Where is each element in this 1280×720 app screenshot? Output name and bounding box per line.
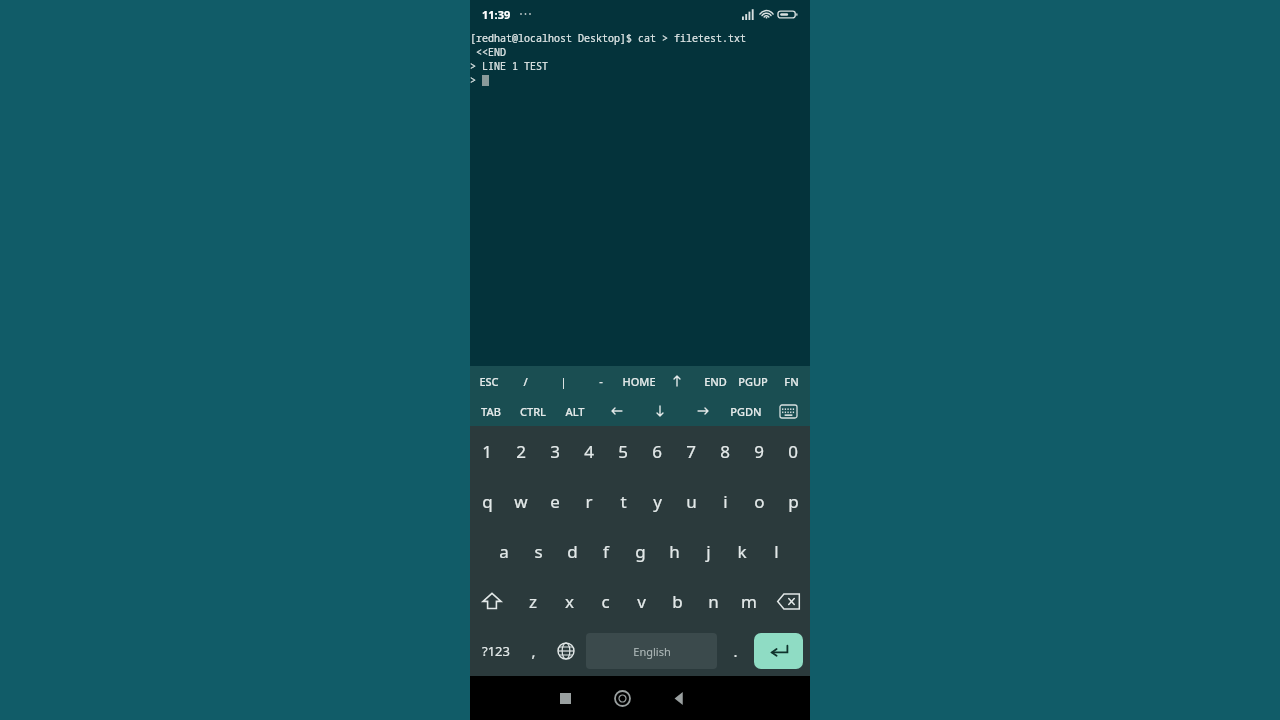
button[interactable]: Down — [638, 396, 681, 426]
staticText: z — [529, 590, 537, 613]
button[interactable]: 1 — [470, 426, 504, 476]
button[interactable]: o — [742, 476, 776, 526]
button[interactable]: 4 — [572, 426, 606, 476]
button[interactable]: g — [623, 526, 657, 576]
staticText: FN — [784, 374, 799, 389]
staticText: k — [737, 540, 747, 563]
button[interactable]: j — [691, 526, 725, 576]
staticText: . — [733, 641, 738, 661]
button[interactable]: PGUP — [734, 366, 772, 396]
button[interactable]: 3 — [538, 426, 572, 476]
staticText: v — [637, 590, 646, 613]
staticText: i — [723, 490, 728, 513]
button[interactable]: y — [640, 476, 674, 526]
button[interactable]: PGDN — [724, 396, 767, 426]
button[interactable]: w — [504, 476, 538, 526]
button[interactable]: x — [551, 576, 587, 626]
staticText: HOME — [622, 374, 656, 389]
button[interactable]: u — [674, 476, 708, 526]
button[interactable]: ALT — [554, 396, 596, 426]
button[interactable]: 8 — [708, 426, 742, 476]
button[interactable]: Backspace — [767, 576, 810, 626]
button[interactable]: f — [589, 526, 623, 576]
staticText: w — [514, 490, 528, 513]
button[interactable]: v — [623, 576, 659, 626]
button[interactable]: p — [776, 476, 810, 526]
button[interactable]: 9 — [742, 426, 776, 476]
button[interactable]: Up — [658, 366, 696, 396]
button[interactable]: q — [470, 476, 504, 526]
button[interactable]: k — [725, 526, 759, 576]
button[interactable]: FN — [772, 366, 810, 396]
staticText: / — [523, 374, 528, 389]
staticText: 7 — [686, 440, 696, 463]
button[interactable]: d — [555, 526, 589, 576]
staticText: <<END — [470, 45, 506, 59]
button[interactable]: END — [696, 366, 734, 396]
staticText: [redhat@localhost Desktop]$ cat > filete… — [470, 31, 746, 45]
button[interactable]: Left — [596, 396, 638, 426]
button[interactable]: CTRL — [512, 396, 554, 426]
button[interactable]: 0 — [776, 426, 810, 476]
button[interactable]: t — [606, 476, 640, 526]
button[interactable]: b — [659, 576, 695, 626]
staticText: 5 — [618, 440, 628, 463]
staticText: END — [704, 374, 727, 389]
staticText: ESC — [479, 374, 499, 389]
staticText: t — [620, 490, 627, 513]
staticText: 9 — [754, 440, 764, 463]
button[interactable]: 7 — [674, 426, 708, 476]
staticText: e — [550, 490, 560, 513]
staticText: q — [482, 490, 493, 513]
staticText: c — [601, 590, 610, 613]
staticText: > — [470, 73, 482, 87]
button[interactable]: n — [695, 576, 731, 626]
staticText: > LINE 1 TEST — [470, 59, 548, 73]
staticText: TAB — [481, 404, 501, 419]
button[interactable]: i — [708, 476, 742, 526]
button[interactable]: 6 — [640, 426, 674, 476]
button[interactable]: Change language — [549, 631, 583, 671]
staticText: m — [741, 590, 757, 613]
button[interactable]: Recents — [537, 676, 594, 720]
button[interactable]: | — [544, 366, 582, 396]
button[interactable]: ?123 — [474, 631, 518, 671]
button[interactable]: e — [538, 476, 572, 526]
staticText: h — [669, 540, 680, 563]
button[interactable]: Shift — [470, 576, 514, 626]
staticText: PGUP — [738, 374, 768, 389]
staticText: 4 — [584, 440, 594, 463]
staticText: a — [499, 540, 509, 563]
button[interactable]: 5 — [606, 426, 640, 476]
button[interactable]: Enter — [754, 633, 803, 669]
staticText: o — [754, 490, 765, 513]
button[interactable]: Hide keyboard — [767, 396, 810, 426]
staticText: p — [788, 490, 799, 513]
staticText: x — [565, 590, 574, 613]
button[interactable]: s — [521, 526, 555, 576]
button[interactable]: , — [518, 631, 549, 671]
staticText: | — [560, 374, 567, 389]
button[interactable]: a — [487, 526, 521, 576]
button[interactable]: - — [582, 366, 620, 396]
button[interactable]: / — [507, 366, 544, 396]
button[interactable]: ESC — [470, 366, 507, 396]
staticText: CTRL — [520, 404, 546, 419]
button[interactable]: Right — [681, 396, 724, 426]
button[interactable]: c — [587, 576, 623, 626]
button[interactable]: z — [514, 576, 551, 626]
button[interactable]: Back — [651, 676, 708, 720]
button[interactable]: m — [731, 576, 767, 626]
button[interactable]: h — [657, 526, 691, 576]
button[interactable]: . — [720, 631, 751, 671]
button[interactable]: English — [586, 633, 717, 669]
button[interactable]: 2 — [504, 426, 538, 476]
staticText: 1 — [482, 440, 492, 463]
staticText: n — [708, 590, 719, 613]
button[interactable]: TAB — [470, 396, 512, 426]
button[interactable]: l — [759, 526, 793, 576]
staticText: b — [672, 590, 683, 613]
button[interactable]: Home — [594, 676, 651, 720]
button[interactable]: HOME — [620, 366, 658, 396]
button[interactable]: r — [572, 476, 606, 526]
